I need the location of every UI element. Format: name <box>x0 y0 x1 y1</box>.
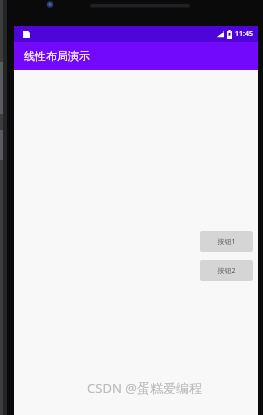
staticText: 11:45 <box>235 29 253 39</box>
staticText: CSDN @蛋糕爱编程 <box>87 379 202 397</box>
staticText: 按钮1 <box>217 237 236 247</box>
staticText: 线性布局演示 <box>24 49 90 63</box>
staticText: 按钮2 <box>217 266 236 276</box>
button[interactable]: 按钮2 <box>200 260 253 281</box>
button[interactable]: 按钮1 <box>200 231 253 252</box>
